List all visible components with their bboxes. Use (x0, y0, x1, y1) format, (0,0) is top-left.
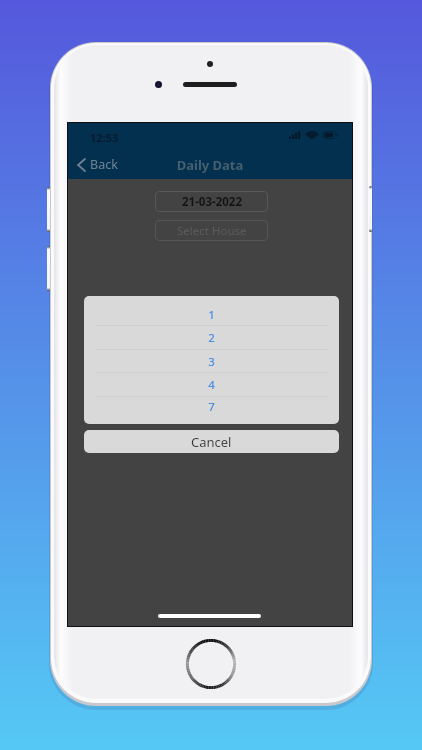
button[interactable]: 1 (84, 296, 339, 325)
staticText: 2 (84, 330, 339, 346)
button[interactable]: Home (186, 639, 236, 689)
staticText: Select House (177, 223, 247, 239)
button[interactable]: Select House (155, 220, 268, 241)
staticText: 1 (84, 307, 339, 323)
button[interactable]: 2 (84, 325, 339, 349)
other: Power (369, 186, 372, 232)
button[interactable]: Back (72, 153, 123, 176)
staticText: Back (90, 156, 118, 173)
button[interactable]: 21-03-2022 (155, 191, 268, 212)
staticText: 7 (84, 399, 339, 415)
other: Volume down (47, 246, 50, 291)
other: Volume up (47, 187, 50, 232)
staticText: Cancel (191, 433, 232, 451)
button[interactable]: 3 (84, 349, 339, 372)
button[interactable]: 4 (84, 372, 339, 395)
staticText: Daily Data (68, 156, 352, 174)
staticText: 4 (84, 377, 339, 393)
staticText: 12:53 (90, 130, 119, 145)
button[interactable]: 7 (84, 396, 339, 424)
staticText: 21-03-2022 (182, 194, 242, 210)
staticText: 3 (84, 354, 339, 370)
button[interactable]: Cancel (84, 430, 339, 453)
